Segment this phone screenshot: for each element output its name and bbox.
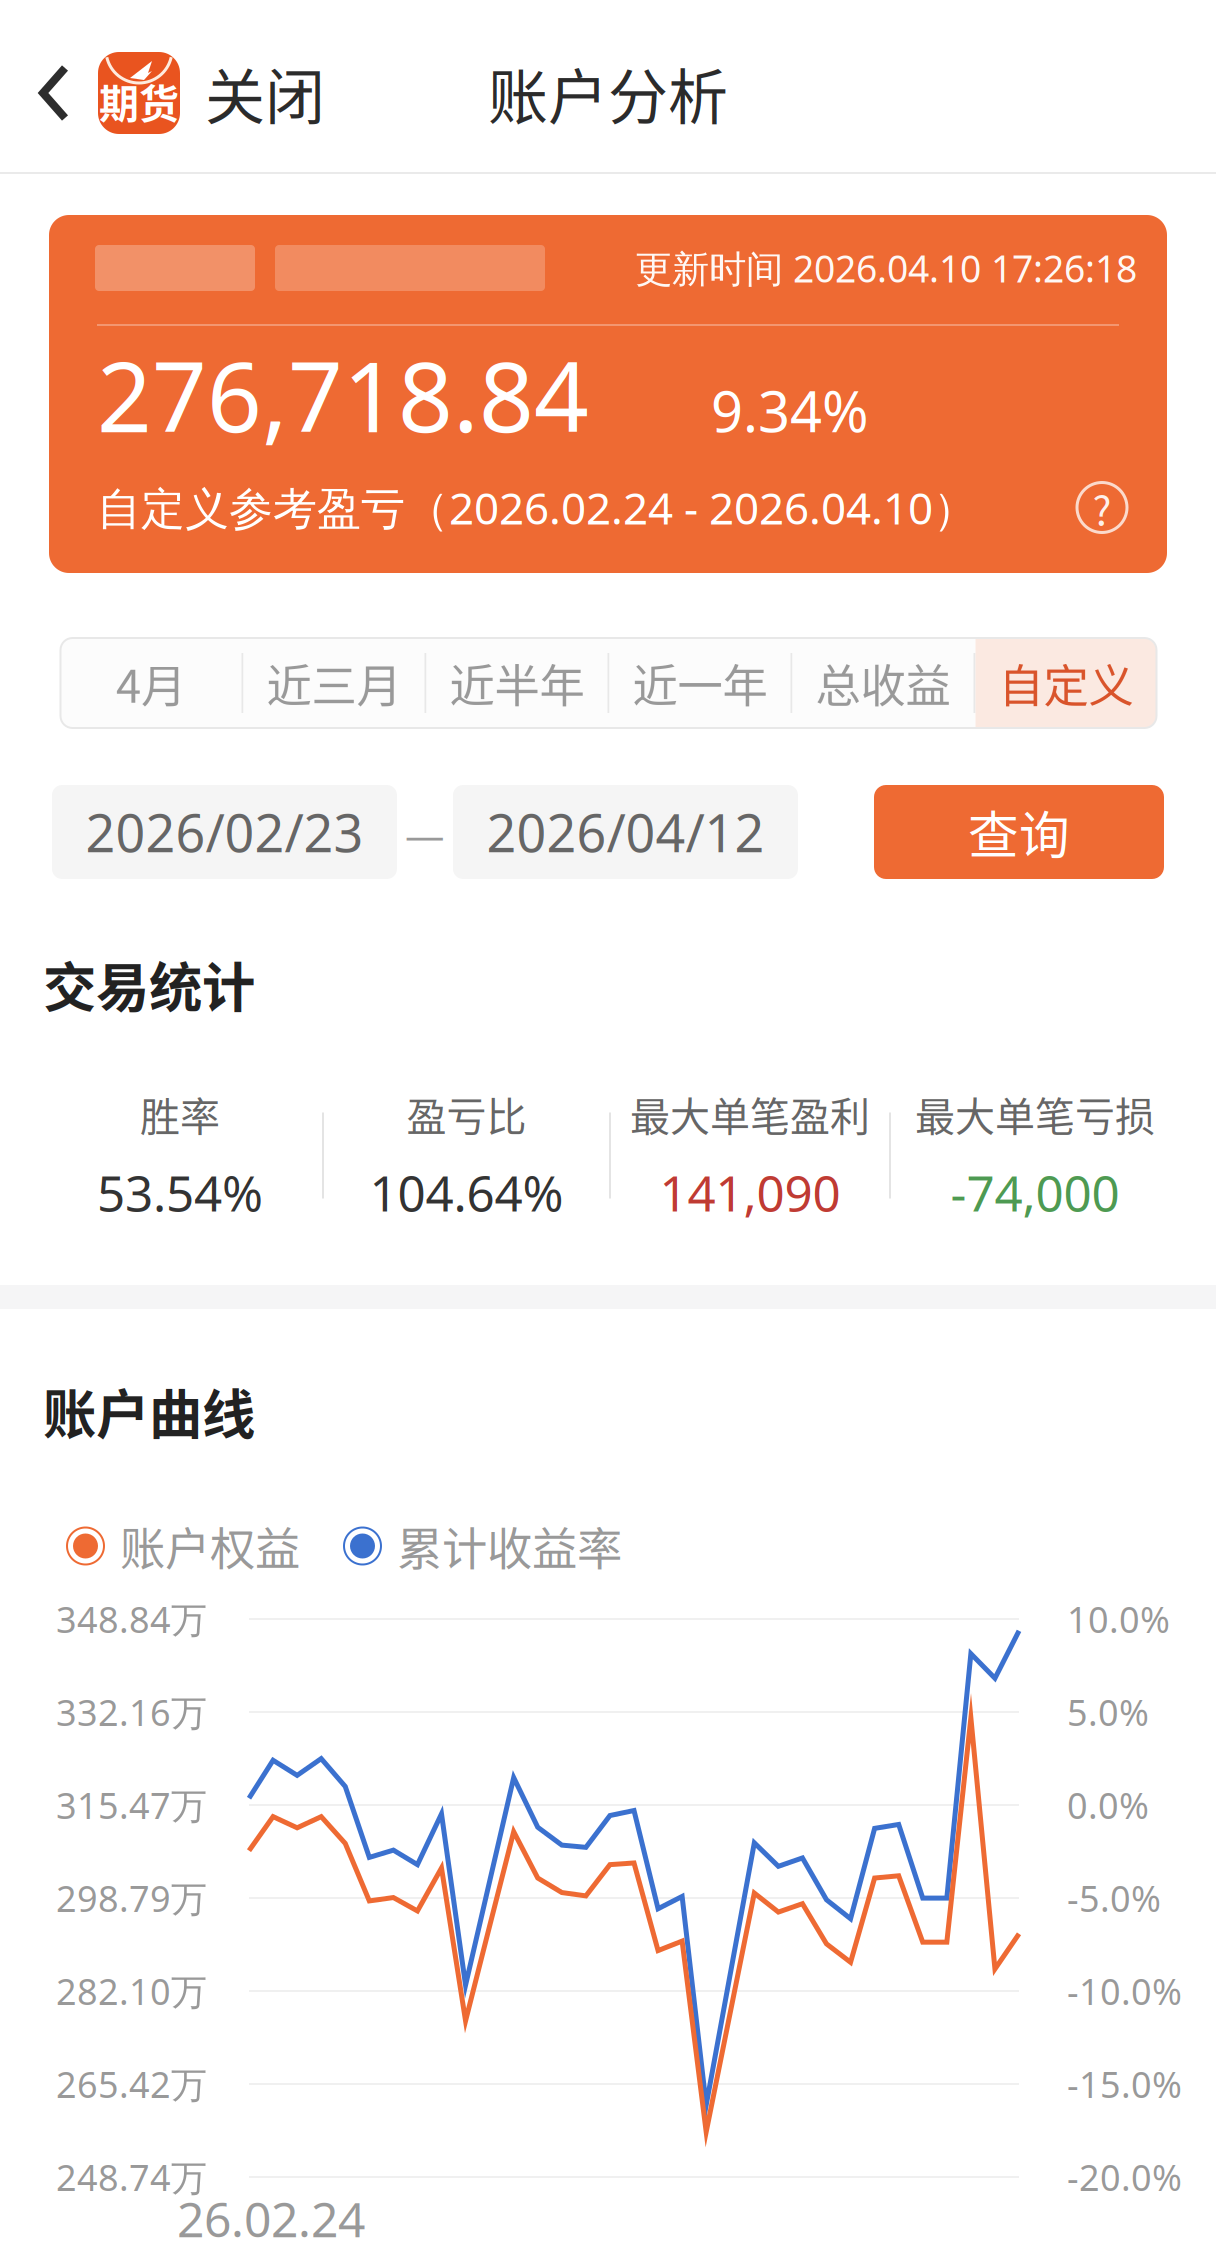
staticText: —: [404, 799, 445, 865]
staticText: 332.16万: [56, 1687, 207, 1736]
staticText: 盈亏比: [406, 1085, 526, 1143]
staticText: 265.42万: [56, 2059, 207, 2108]
staticText: 近三月: [266, 650, 401, 716]
staticText: 查询: [968, 795, 1070, 869]
staticText: 10.0%: [1067, 1594, 1170, 1643]
staticText: 248.74万: [56, 2152, 207, 2201]
button[interactable]: 近三月: [243, 638, 424, 728]
staticText: 276,718.84: [97, 330, 589, 460]
staticText: 26.02.24: [177, 2186, 365, 2251]
button[interactable]: 总收益: [792, 638, 973, 728]
staticText: 最大单笔亏损: [915, 1085, 1155, 1143]
staticText: 2026/04/12: [486, 797, 764, 867]
staticText: 282.10万: [56, 1966, 207, 2015]
staticText: 期货: [99, 72, 179, 130]
staticText: 最大单笔盈利: [630, 1085, 870, 1143]
staticText: 累计收益率: [397, 1513, 622, 1579]
staticText: -10.0%: [1067, 1966, 1182, 2015]
staticText: ?: [1092, 478, 1111, 536]
button[interactable]: 说明: [1077, 482, 1127, 532]
button[interactable]: 自定义: [975, 638, 1156, 728]
staticText: 近一年: [632, 650, 767, 716]
staticText: -20.0%: [1067, 2152, 1182, 2201]
staticText: 4月: [116, 650, 186, 716]
staticText: 348.84万: [56, 1594, 207, 1643]
staticText: 自定义: [998, 650, 1133, 716]
staticText: 0.0%: [1067, 1780, 1149, 1829]
staticText: 近半年: [449, 650, 584, 716]
button[interactable]: 近一年: [609, 638, 790, 728]
button[interactable]: 查询: [874, 785, 1164, 879]
staticText: 关闭: [205, 50, 325, 136]
button[interactable]: 期货: [0, 49, 349, 137]
staticText: -5.0%: [1067, 1873, 1161, 1922]
staticText: 53.54%: [97, 1159, 263, 1226]
staticText: 自定义参考盈亏（2026.02.24 - 2026.04.10）: [97, 477, 977, 537]
staticText: 141,090: [659, 1159, 840, 1226]
staticText: 9.34%: [711, 372, 869, 449]
staticText: -74,000: [950, 1159, 1119, 1226]
staticText: 2026/02/23: [85, 797, 363, 867]
staticText: 账户曲线: [43, 1372, 255, 1450]
staticText: 更新时间 2026.04.10 17:26:18: [635, 243, 1137, 293]
staticText: 298.79万: [56, 1873, 207, 1922]
staticText: 账户权益: [120, 1513, 300, 1579]
staticText: 账户分析: [488, 50, 728, 136]
button[interactable]: 2026/04/12: [453, 785, 798, 879]
staticText: 315.47万: [56, 1780, 207, 1829]
button[interactable]: 4月: [60, 638, 241, 728]
staticText: 104.64%: [369, 1159, 563, 1226]
staticText: -15.0%: [1067, 2059, 1182, 2108]
staticText: 交易统计: [43, 945, 255, 1023]
staticText: 总收益: [815, 650, 950, 716]
staticText: 5.0%: [1067, 1687, 1149, 1736]
button[interactable]: 近半年: [426, 638, 607, 728]
staticText: 胜率: [140, 1085, 220, 1143]
button[interactable]: 2026/02/23: [52, 785, 397, 879]
